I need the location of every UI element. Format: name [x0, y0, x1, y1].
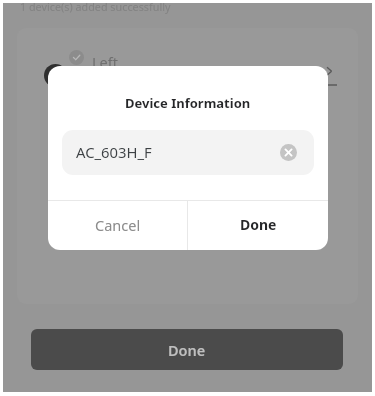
- staticText: Cancel: [95, 215, 141, 235]
- button[interactable]: Done: [31, 329, 343, 370]
- button[interactable]: Clear text: [280, 144, 297, 161]
- button[interactable]: Done: [188, 201, 328, 250]
- staticText: Done: [168, 340, 206, 360]
- staticText: AC_603H_F: [76, 142, 152, 162]
- staticText: 1 device(s) added successfully: [20, 0, 171, 14]
- staticText: Device Information: [125, 94, 251, 112]
- staticText: Left: [92, 52, 118, 72]
- button[interactable]: Cancel: [48, 201, 187, 250]
- button[interactable]: AC_603H_F: [62, 130, 314, 175]
- staticText: Done: [240, 215, 277, 234]
